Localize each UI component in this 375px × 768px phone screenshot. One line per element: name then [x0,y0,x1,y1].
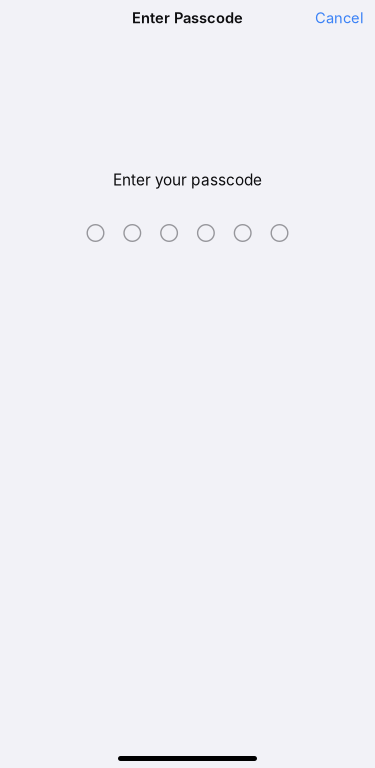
staticText: Cancel [315,9,364,27]
button[interactable]: Cancel [303,2,375,34]
staticText: Enter Passcode [132,9,243,27]
staticText: Enter your passcode [113,171,262,189]
